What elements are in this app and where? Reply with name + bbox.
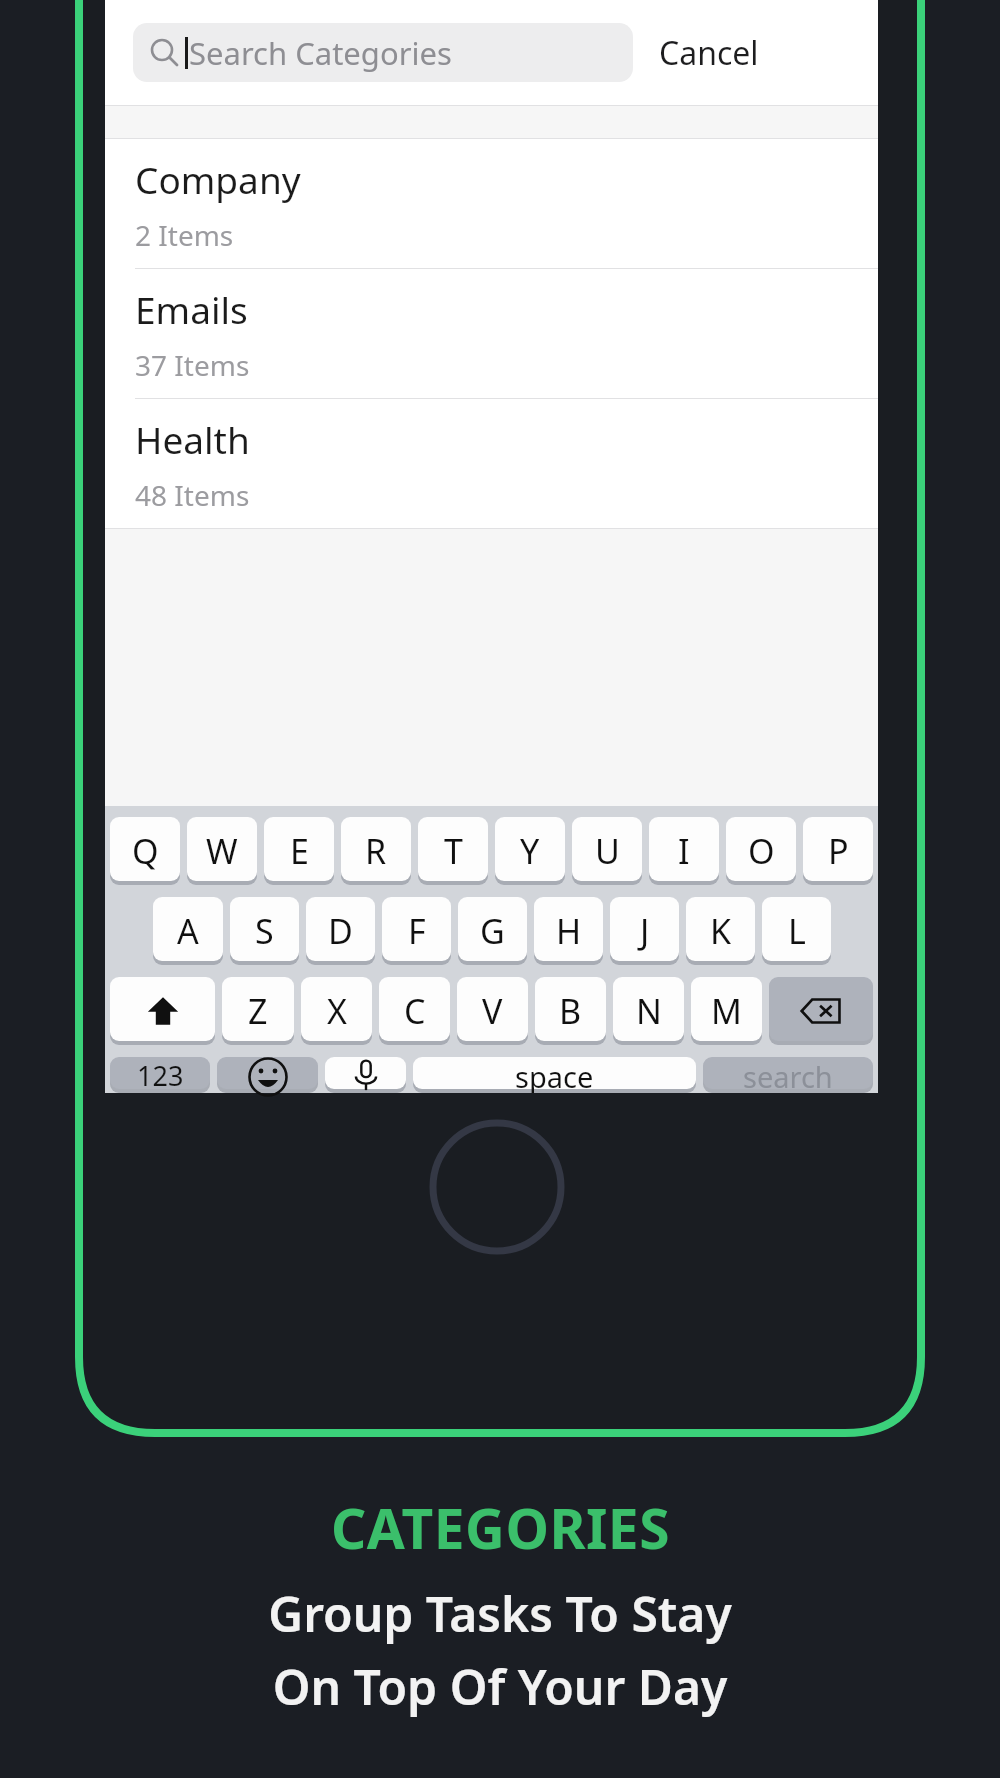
button[interactable]: Emails bbox=[105, 269, 878, 398]
button[interactable]: S bbox=[230, 897, 299, 965]
staticText: Search Categories bbox=[189, 32, 452, 74]
button[interactable]: C bbox=[379, 977, 450, 1045]
staticText: B bbox=[559, 988, 582, 1034]
staticText: 2 Items bbox=[135, 216, 234, 254]
staticText: 123 bbox=[137, 1057, 184, 1093]
staticText: C bbox=[404, 988, 426, 1034]
button[interactable]: Voice input bbox=[325, 1057, 406, 1093]
button[interactable]: J bbox=[610, 897, 679, 965]
button[interactable]: P bbox=[803, 817, 873, 885]
staticText: CATEGORIES bbox=[331, 1490, 670, 1565]
staticText: S bbox=[255, 908, 274, 954]
staticText: O bbox=[748, 828, 775, 874]
staticText: space bbox=[515, 1057, 594, 1093]
button[interactable]: W bbox=[187, 817, 257, 885]
button[interactable]: E bbox=[264, 817, 334, 885]
button[interactable]: Z bbox=[222, 977, 294, 1045]
button[interactable]: I bbox=[649, 817, 719, 885]
button[interactable]: M bbox=[691, 977, 762, 1045]
button[interactable]: T bbox=[418, 817, 488, 885]
button[interactable]: G bbox=[458, 897, 527, 965]
staticText: W bbox=[206, 828, 238, 874]
button[interactable]: Emoji bbox=[217, 1057, 318, 1093]
staticText: N bbox=[636, 988, 662, 1034]
staticText: Z bbox=[248, 988, 268, 1034]
button[interactable]: R bbox=[341, 817, 411, 885]
staticText: Health bbox=[135, 414, 250, 464]
button[interactable]: N bbox=[613, 977, 684, 1045]
button[interactable]: Y bbox=[495, 817, 565, 885]
staticText: T bbox=[444, 828, 463, 874]
staticText: F bbox=[408, 908, 426, 954]
staticText: Group Tasks To Stay On Top Of Your Day bbox=[268, 1581, 732, 1719]
staticText: Company bbox=[135, 154, 301, 204]
button[interactable]: V bbox=[457, 977, 528, 1045]
button[interactable]: space bbox=[413, 1057, 696, 1093]
button[interactable]: A bbox=[153, 897, 223, 965]
staticText: J bbox=[640, 908, 650, 954]
button[interactable]: Health bbox=[105, 399, 878, 528]
other: Home button bbox=[0, 0, 1000, 1778]
staticText: A bbox=[177, 908, 199, 954]
staticText: K bbox=[710, 908, 732, 954]
button[interactable]: L bbox=[762, 897, 831, 965]
button[interactable]: K bbox=[686, 897, 755, 965]
button[interactable]: Cancel bbox=[653, 17, 765, 89]
button[interactable]: X bbox=[301, 977, 372, 1045]
staticText: search bbox=[743, 1057, 833, 1093]
button[interactable]: search bbox=[703, 1057, 873, 1093]
button[interactable]: Company bbox=[105, 139, 878, 268]
button[interactable]: Shift bbox=[110, 977, 215, 1045]
staticText: X bbox=[327, 988, 347, 1034]
button[interactable]: O bbox=[726, 817, 796, 885]
staticText: Emails bbox=[135, 284, 248, 334]
button[interactable]: 123 bbox=[110, 1057, 210, 1093]
staticText: V bbox=[482, 988, 503, 1034]
button[interactable]: Backspace bbox=[769, 977, 873, 1045]
staticText: H bbox=[556, 908, 582, 954]
staticText: M bbox=[711, 988, 742, 1034]
staticText: Y bbox=[520, 828, 540, 874]
button[interactable]: U bbox=[572, 817, 642, 885]
staticText: E bbox=[290, 828, 309, 874]
staticText: 37 Items bbox=[135, 346, 250, 384]
staticText: R bbox=[365, 828, 387, 874]
staticText: 48 Items bbox=[135, 476, 250, 514]
staticText: Cancel bbox=[659, 31, 759, 75]
staticText: Q bbox=[132, 828, 159, 874]
button[interactable]: Q bbox=[110, 817, 180, 885]
staticText: P bbox=[828, 828, 849, 874]
button[interactable]: H bbox=[534, 897, 603, 965]
button[interactable]: D bbox=[306, 897, 375, 965]
button[interactable]: B bbox=[535, 977, 606, 1045]
staticText: D bbox=[328, 908, 353, 954]
staticText: I bbox=[678, 828, 690, 874]
button[interactable]: F bbox=[382, 897, 451, 965]
button[interactable]: Search Categories bbox=[133, 23, 633, 82]
staticText: G bbox=[480, 908, 505, 954]
staticText: U bbox=[595, 828, 620, 874]
staticText: L bbox=[788, 908, 806, 954]
